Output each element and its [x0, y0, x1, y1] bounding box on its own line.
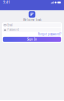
staticText: 9:41 — [3, 1, 10, 4]
staticText: Welcome back — [23, 18, 41, 22]
staticText: Sign In — [27, 38, 37, 41]
button[interactable]: Sign In — [3, 37, 61, 42]
staticText: Email — [7, 23, 13, 27]
staticText: Forgot password? — [38, 32, 61, 36]
button[interactable]: Forgot password? — [38, 32, 61, 36]
staticText: Password — [7, 28, 19, 31]
